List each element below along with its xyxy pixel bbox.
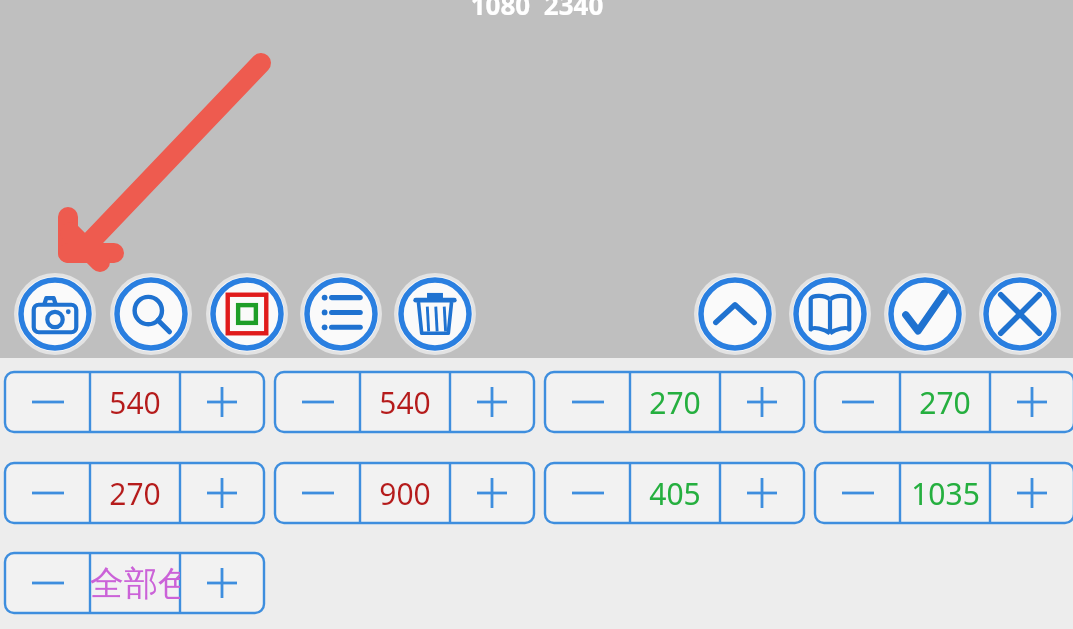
- button[interactable]: [180, 553, 264, 613]
- staticText: 270: [919, 382, 971, 423]
- button[interactable]: [5, 553, 90, 613]
- button[interactable]: [180, 372, 264, 432]
- button[interactable]: [5, 463, 90, 523]
- button[interactable]: [275, 372, 360, 432]
- button[interactable]: 全部色: [90, 553, 180, 613]
- button[interactable]: [990, 372, 1073, 432]
- staticText: 1080 2340: [432, 0, 642, 15]
- button[interactable]: 540: [90, 372, 180, 432]
- button[interactable]: [815, 372, 900, 432]
- button[interactable]: 900: [360, 463, 450, 523]
- button[interactable]: Cancel: [979, 273, 1061, 355]
- button[interactable]: Search: [110, 273, 192, 355]
- staticText: 270: [649, 382, 701, 423]
- button[interactable]: [545, 372, 630, 432]
- button[interactable]: Delete: [394, 273, 476, 355]
- button[interactable]: 1035: [900, 463, 990, 523]
- staticText: 全部色: [90, 562, 180, 605]
- button[interactable]: [180, 463, 264, 523]
- button[interactable]: [545, 463, 630, 523]
- staticText: 540: [379, 382, 431, 423]
- button[interactable]: [5, 372, 90, 432]
- button[interactable]: Manual: [789, 273, 871, 355]
- button[interactable]: [275, 463, 360, 523]
- button[interactable]: 405: [630, 463, 720, 523]
- button[interactable]: [815, 463, 900, 523]
- button[interactable]: Confirm: [884, 273, 966, 355]
- staticText: 1035: [911, 473, 980, 514]
- button[interactable]: [450, 463, 534, 523]
- button[interactable]: Collapse: [694, 273, 776, 355]
- button[interactable]: [720, 372, 804, 432]
- button[interactable]: Camera: [14, 273, 96, 355]
- button[interactable]: List: [300, 273, 382, 355]
- button[interactable]: 270: [900, 372, 990, 432]
- staticText: 270: [109, 473, 161, 514]
- staticText: 405: [649, 473, 701, 514]
- staticText: 900: [379, 473, 431, 514]
- button[interactable]: Frame: [206, 273, 288, 355]
- button[interactable]: 540: [360, 372, 450, 432]
- button[interactable]: [450, 372, 534, 432]
- button[interactable]: 270: [90, 463, 180, 523]
- button[interactable]: [720, 463, 804, 523]
- button[interactable]: 270: [630, 372, 720, 432]
- staticText: 540: [109, 382, 161, 423]
- button[interactable]: [990, 463, 1073, 523]
